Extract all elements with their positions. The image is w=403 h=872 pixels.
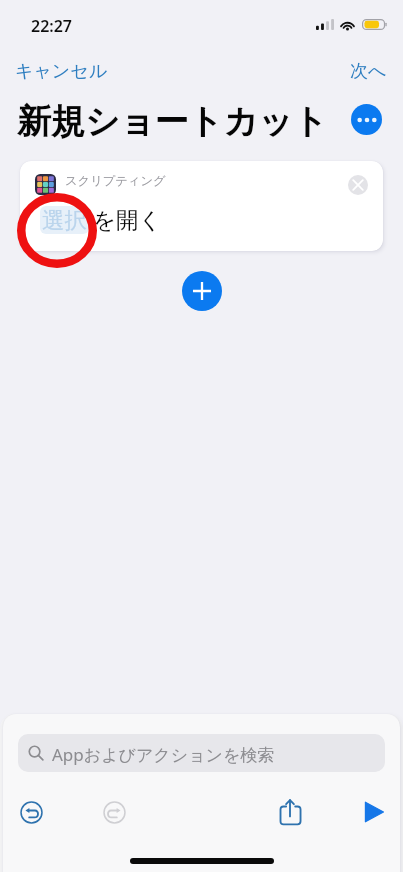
button[interactable]: Remove action [348,175,368,195]
staticText: スクリプティング [65,173,166,188]
staticText: 新規ショートカット [17,100,328,143]
button[interactable]: 次へ [342,56,395,87]
button[interactable]: 選択 [40,206,89,234]
staticText: を開く [93,206,162,234]
button[interactable]: More options [351,104,382,135]
button[interactable]: Undo [15,796,47,828]
staticText: キャンセル [15,60,108,83]
button[interactable]: スクリプティング [20,161,383,251]
staticText: 次へ [350,60,387,83]
button[interactable]: Redo [98,796,130,828]
staticText: Appおよびアクションを検索 [52,743,275,766]
button[interactable]: キャンセル [7,56,116,87]
button[interactable]: Share [274,796,306,828]
button[interactable]: Add action [182,271,222,311]
staticText: 22:27 [31,15,73,37]
button[interactable]: Run [358,796,390,828]
staticText: 選択 [42,206,87,234]
button[interactable]: Appおよびアクションを検索 [18,734,385,772]
